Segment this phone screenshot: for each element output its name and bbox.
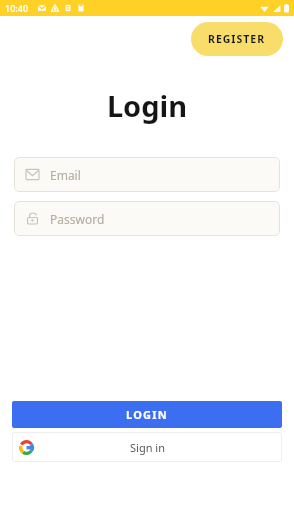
other: Google [19, 440, 34, 455]
button[interactable]: LOGIN [12, 401, 282, 428]
button[interactable]: Email [14, 157, 280, 192]
staticText: LOGIN [126, 407, 168, 422]
staticText: Password [50, 211, 105, 227]
staticText: Email [50, 167, 81, 183]
button[interactable]: Google [12, 432, 282, 462]
staticText: 10:40 [5, 2, 29, 14]
staticText: Login [0, 86, 294, 125]
staticText: REGISTER [208, 32, 266, 46]
button[interactable]: Password [14, 201, 280, 236]
button[interactable]: REGISTER [191, 22, 283, 56]
staticText: Sign in [130, 440, 165, 455]
